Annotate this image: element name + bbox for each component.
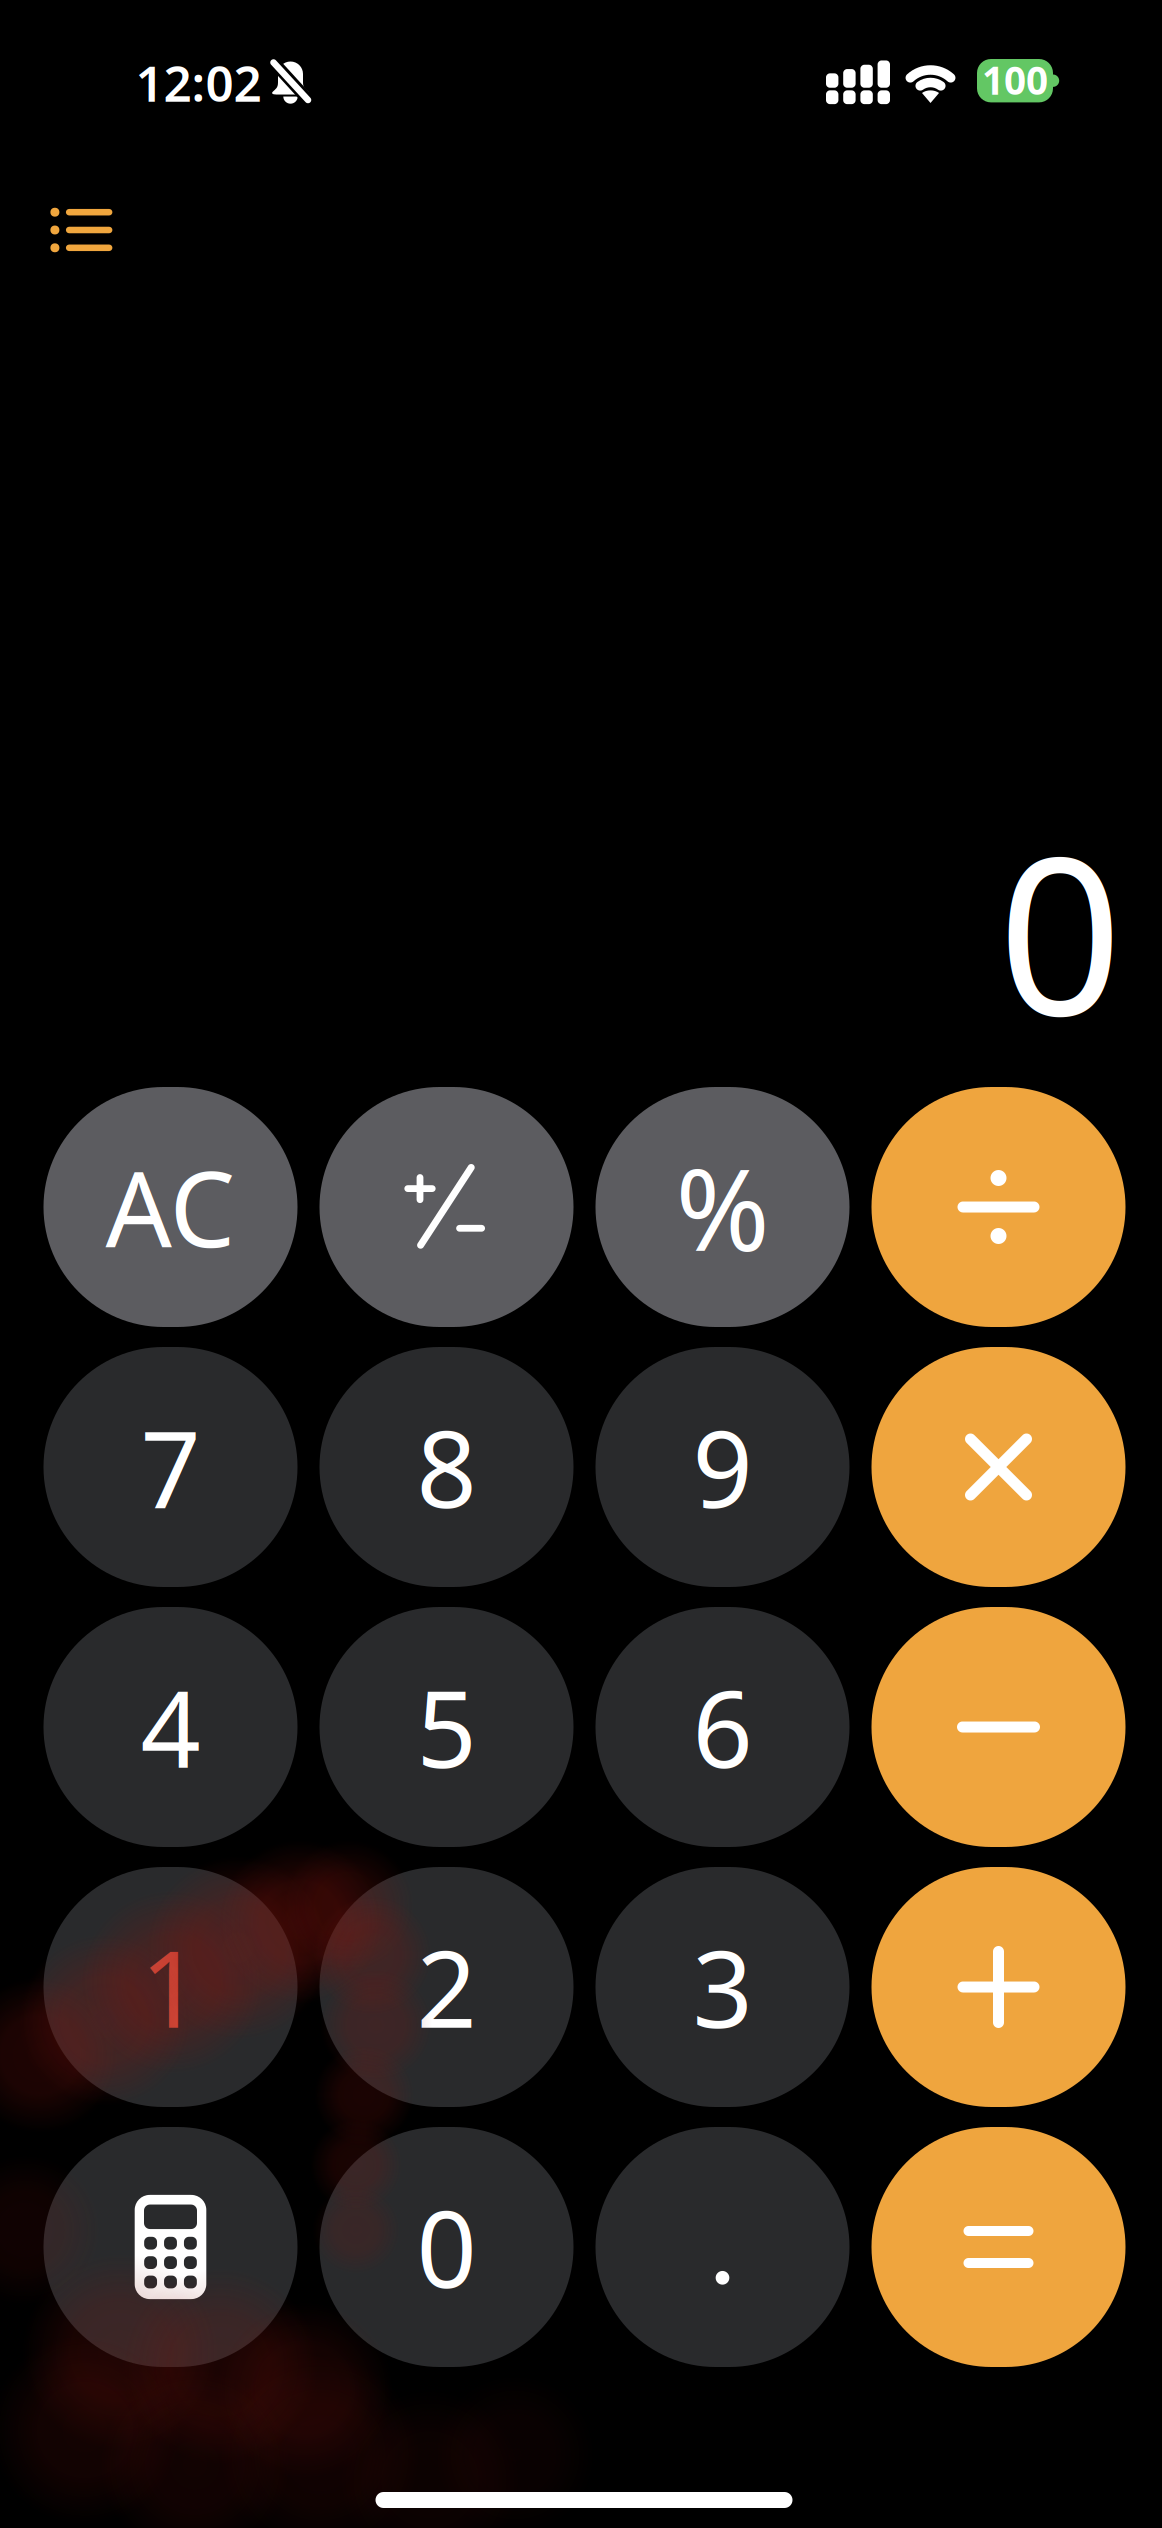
button[interactable]: 5 <box>319 1607 573 1847</box>
staticText: 100 <box>982 54 1048 105</box>
staticText: 8 <box>416 1397 476 1537</box>
staticText: 7 <box>140 1397 200 1537</box>
button[interactable]: 0 <box>319 2127 573 2367</box>
button[interactable]: 3 <box>595 1867 849 2107</box>
button[interactable]: Minus <box>871 1607 1125 1847</box>
staticText: % <box>675 1132 769 1282</box>
staticText: 9 <box>692 1397 752 1537</box>
button[interactable]: Divide <box>871 1087 1125 1327</box>
staticText: 3 <box>692 1917 752 2057</box>
staticText: 4 <box>140 1657 200 1797</box>
button[interactable]: Calculator <box>43 2127 297 2367</box>
button[interactable]: Decimal point <box>595 2127 849 2367</box>
button[interactable]: 8 <box>319 1347 573 1587</box>
button[interactable]: Multiply <box>871 1347 1125 1587</box>
button[interactable]: History <box>36 184 126 276</box>
button[interactable]: AC <box>43 1087 297 1327</box>
staticText: 5 <box>416 1657 476 1797</box>
button[interactable]: 7 <box>43 1347 297 1587</box>
staticText: 0 <box>416 2177 476 2317</box>
button[interactable]: 2 <box>319 1867 573 2107</box>
button[interactable]: 9 <box>595 1347 849 1587</box>
staticText: 6 <box>692 1657 752 1797</box>
staticText: 12:02 <box>136 50 262 115</box>
button[interactable]: 1 <box>43 1867 297 2107</box>
button[interactable]: Percent <box>595 1087 849 1327</box>
staticText: 2 <box>416 1917 476 2057</box>
button[interactable]: 4 <box>43 1607 297 1847</box>
button[interactable]: Plus <box>871 1867 1125 2107</box>
button[interactable]: 6 <box>595 1607 849 1847</box>
staticText: 1 <box>140 1917 200 2057</box>
button[interactable]: Equals <box>871 2127 1125 2367</box>
button[interactable]: Plus minus <box>319 1087 573 1327</box>
staticText: AC <box>105 1138 235 1276</box>
staticText: 0 <box>998 787 1122 1075</box>
